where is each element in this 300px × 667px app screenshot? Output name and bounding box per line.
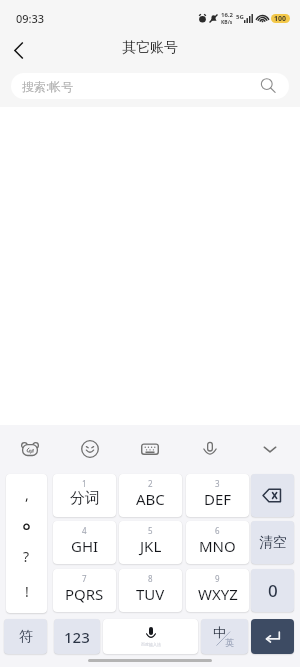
staticText: 分词 <box>70 489 100 508</box>
staticText: 百度输入法 <box>141 642 161 647</box>
staticText: 3 <box>215 478 220 489</box>
staticText: 7 <box>82 573 87 584</box>
button[interactable]: 1 <box>53 474 116 517</box>
staticText: 09:33 <box>16 11 45 26</box>
button[interactable]: 4 <box>53 521 116 564</box>
staticText: 搜索:帐号 <box>22 78 74 94</box>
staticText: 其它账号 <box>122 39 178 57</box>
button[interactable]: Hide keyboard <box>240 425 300 466</box>
button[interactable]: Delete <box>251 474 294 517</box>
button[interactable]: 123 <box>54 619 100 654</box>
button[interactable]: Space / voice input <box>103 619 198 654</box>
staticText: MNO <box>199 536 236 556</box>
staticText: KB/s <box>221 19 233 26</box>
button[interactable]: 7 <box>53 569 116 612</box>
button[interactable]: 符 <box>4 619 47 654</box>
staticText: 6 <box>215 525 220 536</box>
staticText: , <box>25 485 29 504</box>
button[interactable]: 清空 <box>251 521 294 564</box>
button[interactable]: 搜索:帐号 <box>11 73 289 99</box>
staticText: 0 <box>268 579 278 602</box>
staticText: 符 <box>19 628 33 646</box>
button[interactable]: 0 <box>251 569 294 612</box>
staticText: 8 <box>148 573 153 584</box>
button[interactable]: Enter <box>251 619 294 654</box>
staticText: TUV <box>136 584 165 604</box>
staticText: 123 <box>64 627 90 647</box>
staticText: 5G <box>236 13 244 21</box>
staticText: 4 <box>82 525 87 536</box>
button[interactable]: 5 <box>119 521 182 564</box>
button[interactable]: Baidu input method <box>0 425 60 466</box>
button[interactable]: Emoji <box>60 425 120 466</box>
button[interactable]: 3 <box>186 474 249 517</box>
staticText: ? <box>23 547 30 566</box>
staticText: DEF <box>204 489 232 509</box>
button[interactable]: Chinese English toggle <box>201 619 248 654</box>
staticText: JKL <box>140 536 162 556</box>
staticText: GHI <box>71 536 99 556</box>
staticText: ! <box>25 582 29 601</box>
button[interactable]: , <box>6 474 47 613</box>
staticText: 2 <box>148 478 153 489</box>
staticText: ABC <box>136 489 165 509</box>
button[interactable]: 2 <box>119 474 182 517</box>
staticText: 1 <box>82 478 87 489</box>
button[interactable]: Voice input <box>180 425 240 466</box>
button[interactable]: Back <box>0 29 36 65</box>
staticText: 中 <box>213 624 226 640</box>
button[interactable]: 9 <box>186 569 249 612</box>
staticText: WXYZ <box>198 584 238 604</box>
staticText: PQRS <box>65 584 104 604</box>
staticText: 清空 <box>259 534 287 552</box>
staticText: 16.2 <box>221 11 233 19</box>
staticText: 英 <box>225 637 234 648</box>
staticText: 5 <box>148 525 153 536</box>
staticText: 9 <box>215 573 220 584</box>
button[interactable]: 8 <box>119 569 182 612</box>
button[interactable]: Keyboard layout <box>120 425 180 466</box>
staticText: 100 <box>274 14 287 23</box>
button[interactable]: 6 <box>186 521 249 564</box>
